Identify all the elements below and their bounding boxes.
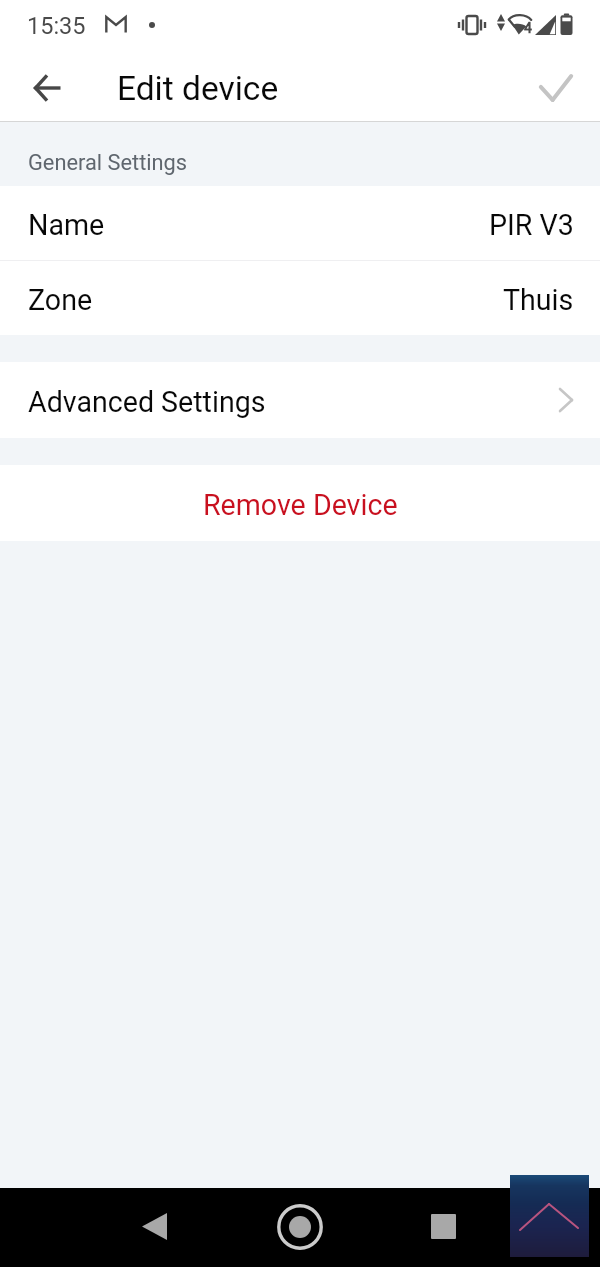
staticText: Advanced Settings xyxy=(28,385,266,419)
button[interactable]: Overlay widget xyxy=(510,1175,589,1257)
staticText: PIR V3 xyxy=(489,208,574,242)
staticText: Zone xyxy=(28,283,93,317)
staticText: General Settings xyxy=(28,150,188,176)
staticText: 15:35 xyxy=(27,12,86,40)
button[interactable]: Recents xyxy=(415,1198,471,1254)
button[interactable]: Back xyxy=(126,1198,182,1254)
button[interactable]: Name xyxy=(0,186,600,260)
button[interactable]: Save xyxy=(529,61,583,115)
staticText: Name xyxy=(28,208,105,242)
button[interactable]: Home xyxy=(271,1198,329,1256)
button[interactable]: Back xyxy=(20,61,74,115)
button[interactable]: Remove Device xyxy=(0,465,600,541)
button[interactable]: Zone xyxy=(0,261,600,335)
staticText: Thuis xyxy=(503,283,574,317)
staticText: 4 xyxy=(524,20,532,36)
staticText: Edit device xyxy=(117,69,279,108)
button[interactable]: Advanced Settings xyxy=(0,362,600,438)
staticText: Remove Device xyxy=(203,488,398,522)
